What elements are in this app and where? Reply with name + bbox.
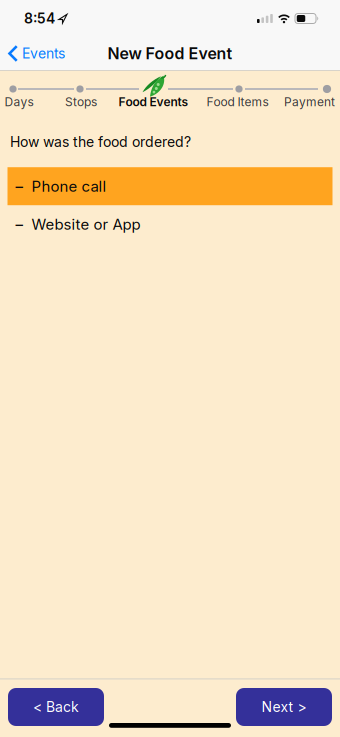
button[interactable]: Next > (236, 688, 332, 726)
staticText: Next > (261, 699, 306, 715)
staticText: Events (22, 45, 65, 62)
staticText: Payment (284, 95, 335, 109)
button[interactable]: – (7, 167, 332, 205)
staticText: Stops (65, 95, 97, 109)
staticText: How was the food ordered? (10, 134, 191, 150)
button[interactable]: – (7, 205, 332, 243)
staticText: 8:54 (24, 10, 55, 27)
staticText: Days (4, 95, 33, 109)
staticText: Food Items (206, 95, 268, 109)
button[interactable]: Events (0, 45, 65, 62)
staticText: Food Events (118, 95, 188, 109)
staticText: – (15, 177, 23, 195)
button[interactable]: < Back (8, 688, 104, 726)
staticText: New Food Event (107, 44, 232, 63)
staticText: Phone call (31, 177, 106, 195)
staticText: Website or App (31, 215, 140, 233)
staticText: < Back (33, 699, 79, 715)
staticText: – (15, 215, 23, 233)
